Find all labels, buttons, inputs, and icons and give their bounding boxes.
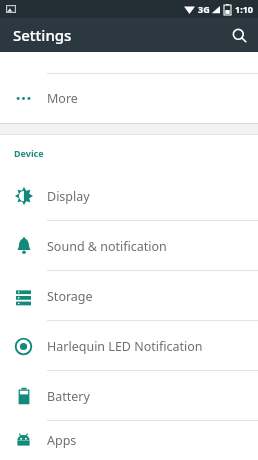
staticText: Data usage [47, 33, 114, 50]
staticText: Device [14, 147, 44, 159]
staticText: Battery [47, 388, 90, 405]
staticText: More [47, 90, 78, 107]
staticText: 3G [198, 3, 210, 15]
staticText: Harlequin LED Notification [47, 338, 203, 355]
button[interactable]: Data usage [0, 52, 258, 74]
button[interactable]: Search [224, 20, 254, 50]
button[interactable]: Battery [0, 371, 258, 421]
staticText: Apps [47, 432, 77, 449]
button[interactable]: Harlequin LED Notification [0, 321, 258, 371]
staticText: Settings [13, 25, 72, 45]
button[interactable]: More [0, 74, 258, 123]
button[interactable]: Display [0, 171, 258, 221]
button[interactable]: Sound & notification [0, 221, 258, 271]
staticText: 1:10 [235, 3, 253, 15]
button[interactable]: Storage [0, 271, 258, 321]
staticText: Sound & notification [47, 238, 167, 255]
staticText: Display [47, 188, 90, 205]
staticText: Storage [47, 288, 93, 305]
button[interactable]: Apps [0, 421, 258, 460]
